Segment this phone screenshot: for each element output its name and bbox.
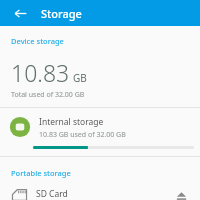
- staticText: Device storage: [11, 36, 64, 46]
- staticText: Internal storage: [39, 116, 104, 128]
- button[interactable]: Eject SD Card: [170, 189, 192, 200]
- staticText: 10.83 GB used of 32.00 GB: [39, 130, 126, 140]
- staticText: 10.83: [11, 57, 70, 88]
- staticText: Portable storage: [11, 168, 71, 178]
- button[interactable]: Internal storage: [0, 108, 200, 156]
- button[interactable]: Back: [8, 1, 32, 25]
- staticText: Total used of 32.00 GB: [11, 90, 85, 100]
- staticText: GB: [73, 71, 87, 85]
- button[interactable]: SD Card: [0, 188, 200, 200]
- staticText: SD Card: [36, 188, 68, 200]
- staticText: Storage: [41, 6, 82, 21]
